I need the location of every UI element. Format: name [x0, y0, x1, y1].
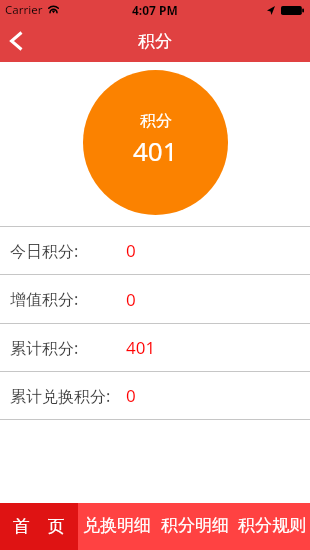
staticText: 0 — [126, 288, 136, 311]
button[interactable]: 今日积分: — [0, 227, 310, 274]
staticText: 累计积分: — [10, 337, 79, 359]
button[interactable]: 累计积分: — [0, 324, 310, 371]
button[interactable]: 兑换明细 — [78, 503, 156, 550]
staticText: 积分明细 — [161, 515, 229, 536]
staticText: 0 — [126, 384, 136, 407]
staticText: 增值积分: — [10, 288, 79, 310]
staticText: 兑换明细 — [83, 515, 151, 536]
button[interactable]: 积分明细 — [156, 503, 233, 550]
staticText: 401 — [126, 336, 156, 359]
staticText: 今日积分: — [10, 240, 79, 262]
staticText: 401 — [133, 133, 178, 168]
button[interactable]: 增值积分: — [0, 275, 310, 323]
button[interactable]: 首 页 — [0, 503, 78, 550]
staticText: 积分 — [140, 111, 172, 131]
staticText: 0 — [126, 239, 136, 262]
staticText: 积分规则 — [238, 515, 306, 536]
staticText: 首 页 — [13, 514, 65, 537]
staticText: 4:07 PM — [132, 2, 178, 18]
button[interactable]: 累计兑换积分: — [0, 372, 310, 419]
button[interactable]: 积分规则 — [233, 503, 310, 550]
button[interactable]: Back — [0, 20, 36, 62]
staticText: 积分 — [138, 31, 172, 52]
staticText: 累计兑换积分: — [10, 385, 111, 407]
staticText: Carrier — [5, 2, 43, 18]
